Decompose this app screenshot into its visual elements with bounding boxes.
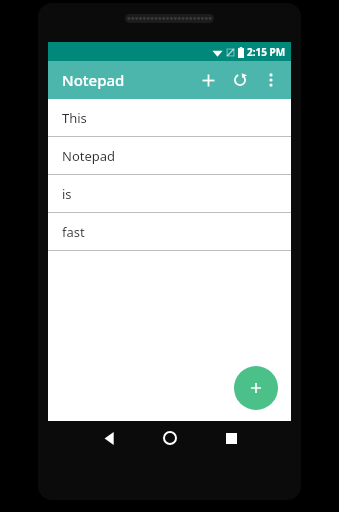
staticText: is [62,185,72,203]
button[interactable]: More options [257,66,285,94]
button[interactable]: Recent apps [214,421,248,455]
button[interactable]: Add note [234,366,278,410]
staticText: This [62,109,87,127]
staticText: fast [62,223,85,241]
button[interactable]: Notepad [48,137,291,175]
button[interactable]: Home [153,421,187,455]
button[interactable]: fast [48,213,291,251]
button[interactable]: Refresh [225,65,255,95]
button[interactable]: This [48,99,291,137]
button[interactable]: New note [193,65,223,95]
button[interactable]: is [48,175,291,213]
button[interactable]: Back [92,421,126,455]
staticText: Notepad [62,70,125,90]
staticText: Notepad [62,147,116,165]
staticText: 2:15 PM [247,45,286,59]
